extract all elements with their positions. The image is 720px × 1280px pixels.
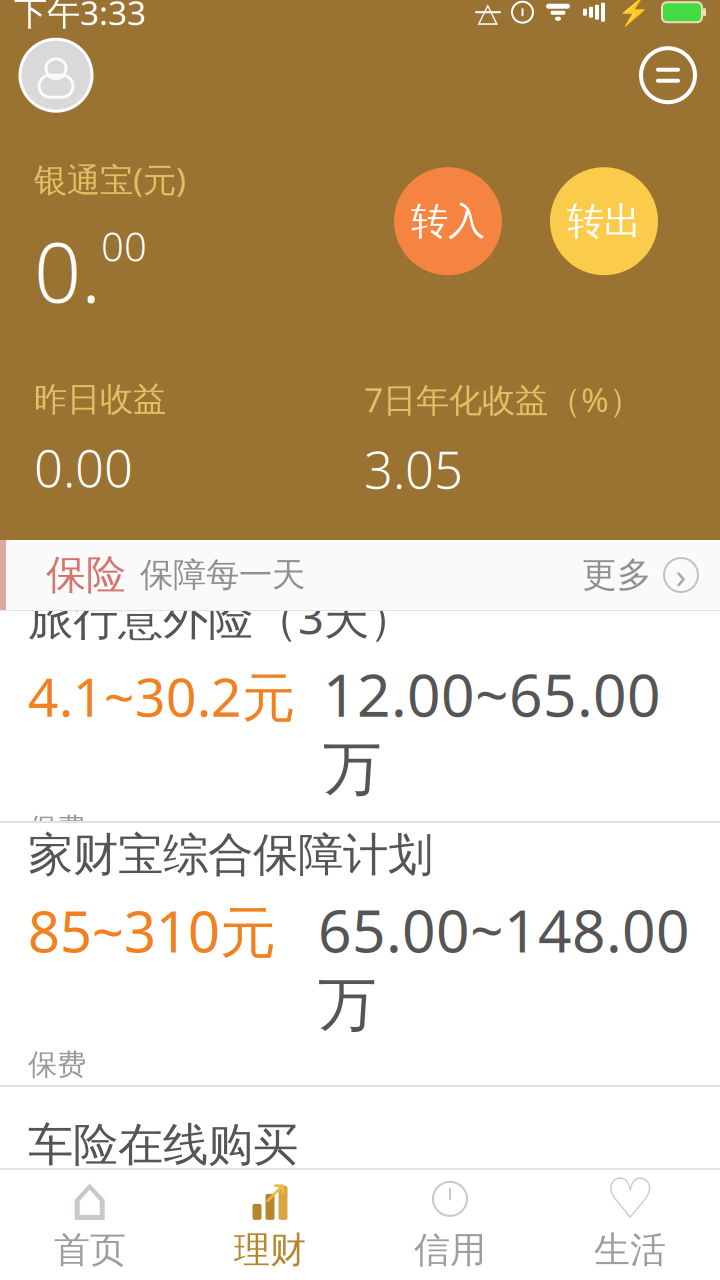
staticText: 信用 (414, 1228, 486, 1272)
button[interactable]: 旅行意外险（3天） (0, 611, 720, 821)
staticText: 下午3:33 (14, 0, 146, 34)
staticText: ↗ (261, 1174, 288, 1210)
staticText: 保费 (28, 1047, 86, 1083)
staticText: ⌂ (70, 1164, 109, 1234)
staticText: 旅行意外险（3天） (28, 587, 414, 647)
button[interactable]: 信用 (360, 1170, 540, 1280)
staticText: 85~310元 (28, 894, 276, 968)
staticText: 0. (34, 215, 101, 325)
button[interactable]: 转出 (550, 167, 658, 275)
button[interactable]: 消息 (632, 39, 704, 111)
staticText: 首页 (54, 1228, 126, 1272)
button[interactable]: ↗ (180, 1170, 360, 1280)
staticText: 65.00~148.00万 (318, 891, 690, 1041)
button[interactable]: 车险在线购买 (0, 1087, 720, 1207)
staticText: 7日年化收益（%） (364, 377, 642, 421)
staticText: 转入 (411, 198, 485, 244)
staticText: 保险 (46, 550, 126, 599)
staticText: 车险在线购买 (28, 1117, 298, 1173)
staticText: 00 (101, 219, 147, 273)
button[interactable]: ⌂ (0, 1170, 180, 1280)
staticText: 保费 (28, 811, 86, 847)
button[interactable]: 保险 (0, 540, 720, 610)
staticText: 0.00 (34, 434, 133, 501)
staticText: ♡ (605, 1167, 655, 1231)
button[interactable]: 家财宝综合保障计划 (0, 823, 720, 1085)
staticText: 昨日收益 (34, 379, 166, 420)
staticText: 理财 (234, 1228, 306, 1272)
staticText: 家财宝综合保障计划 (28, 827, 433, 883)
button[interactable]: 个人中心 (16, 35, 96, 115)
staticText: 生活 (594, 1228, 666, 1272)
button[interactable]: ♡ (540, 1170, 720, 1280)
staticText: 12.00~65.00万 (323, 655, 661, 805)
staticText: 4.1~30.2元 (28, 661, 295, 731)
staticText: › (675, 552, 686, 598)
staticText: 3.05 (364, 435, 463, 503)
staticText: △ (477, 0, 498, 27)
staticText: 更多 (582, 554, 652, 596)
staticText: 银通宝(元) (34, 157, 186, 201)
staticText: ⚡ (617, 0, 650, 27)
button[interactable]: 转入 (394, 167, 502, 275)
staticText: 保障每一天 (140, 554, 305, 595)
staticText: 转出 (567, 198, 641, 244)
